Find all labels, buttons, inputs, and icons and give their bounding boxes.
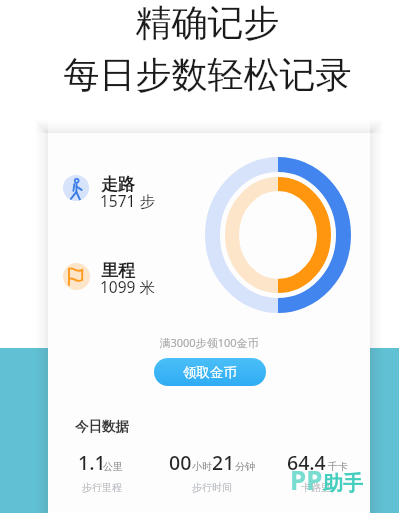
staticText: 卡路里	[236, 481, 370, 494]
staticText: 领取金币	[183, 364, 237, 381]
staticText: 步行时间	[132, 481, 292, 494]
button[interactable]: Walking	[60, 172, 200, 212]
staticText: 步行里程	[48, 481, 182, 494]
staticText: 1.1	[78, 449, 106, 476]
button[interactable]: 领取金币	[154, 358, 266, 386]
staticText: 走路	[101, 174, 135, 195]
other: Distance	[63, 263, 90, 290]
staticText: 千卡	[328, 460, 348, 473]
staticText: 1571 步	[100, 190, 155, 211]
staticText: 64.4	[287, 449, 326, 476]
staticText: 满3000步领100金币	[48, 335, 370, 350]
staticText: 助手	[323, 471, 363, 496]
staticText: 00	[169, 449, 192, 476]
staticText: 每日步数轻松记录	[8, 52, 399, 97]
staticText: 精确记步	[8, 0, 399, 45]
staticText: 小时	[192, 460, 212, 473]
other: Walking	[63, 175, 89, 201]
staticText: 1099 米	[100, 276, 155, 297]
staticText: 分钟	[235, 460, 255, 473]
staticText: 里程	[101, 260, 135, 281]
staticText: 21	[212, 449, 235, 476]
staticText: 公里	[103, 460, 123, 473]
staticText: PP	[290, 462, 323, 497]
button[interactable]: Distance	[60, 258, 200, 298]
staticText: 今日数据	[75, 418, 129, 435]
